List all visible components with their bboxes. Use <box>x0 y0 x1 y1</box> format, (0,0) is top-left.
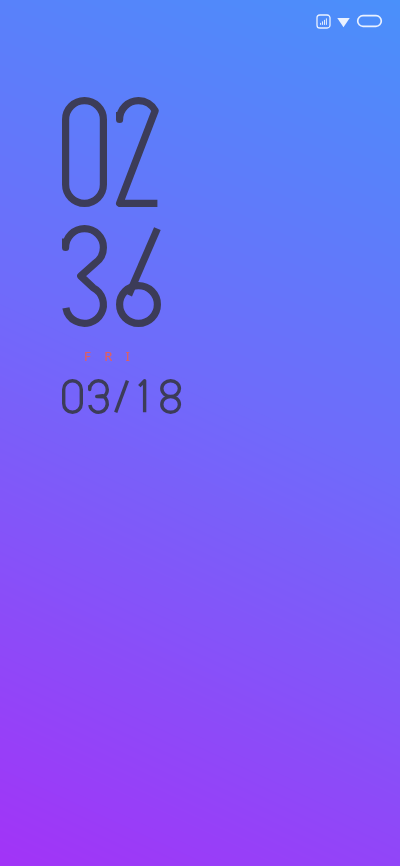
other: Mobile signal <box>317 15 330 28</box>
button[interactable]: F R I <box>62 97 172 414</box>
other: Wi-Fi <box>337 15 350 28</box>
staticText: F R I <box>84 347 136 365</box>
other: Battery <box>357 15 382 27</box>
